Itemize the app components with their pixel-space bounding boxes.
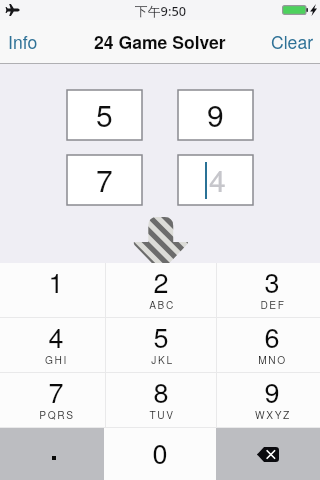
button[interactable]: 3	[217, 263, 320, 317]
staticText: TUV	[149, 407, 175, 422]
button[interactable]: 8	[106, 373, 216, 427]
staticText: DEF	[260, 297, 286, 312]
staticText: 8	[153, 372, 169, 411]
staticText: 9	[264, 372, 280, 411]
button[interactable]: Decimal point	[0, 428, 104, 480]
staticText: 3	[264, 262, 280, 301]
staticText: JKL	[151, 352, 174, 367]
staticText: 5	[96, 93, 113, 136]
staticText: Info	[8, 29, 38, 54]
staticText: 下午9:50	[135, 2, 187, 19]
button[interactable]: 6	[217, 318, 320, 372]
staticText: 4	[48, 317, 64, 356]
button[interactable]: 9	[178, 90, 253, 140]
button[interactable]: 7	[67, 155, 142, 205]
button[interactable]: 5	[67, 90, 142, 140]
button[interactable]: Info	[0, 21, 50, 64]
button[interactable]: 2	[106, 263, 216, 317]
button[interactable]: Clear	[259, 21, 320, 64]
staticText: 2	[153, 262, 169, 301]
button[interactable]: 9	[217, 373, 320, 427]
staticText: 1	[48, 262, 64, 301]
staticText: 24 Game Solver	[94, 29, 226, 54]
staticText: 7	[96, 158, 113, 201]
button[interactable]: 4	[178, 155, 253, 205]
staticText: 9	[207, 93, 224, 136]
staticText: 4	[209, 158, 226, 201]
staticText: MNO	[258, 352, 287, 367]
staticText: 0	[152, 433, 168, 472]
staticText: 5	[153, 317, 169, 356]
staticText: ABC	[149, 297, 175, 312]
staticText: GHI	[45, 352, 68, 367]
button[interactable]: 0	[105, 428, 215, 480]
staticText: 6	[264, 317, 280, 356]
staticText: 7	[48, 372, 64, 411]
staticText: PQRS	[39, 407, 75, 422]
button[interactable]: Delete	[216, 428, 320, 480]
staticText: WXYZ	[255, 407, 291, 422]
button[interactable]: 5	[106, 318, 216, 372]
button[interactable]: 4	[0, 318, 105, 372]
staticText: Clear	[271, 29, 314, 54]
button[interactable]: 7	[0, 373, 105, 427]
button[interactable]: 1	[0, 263, 105, 317]
